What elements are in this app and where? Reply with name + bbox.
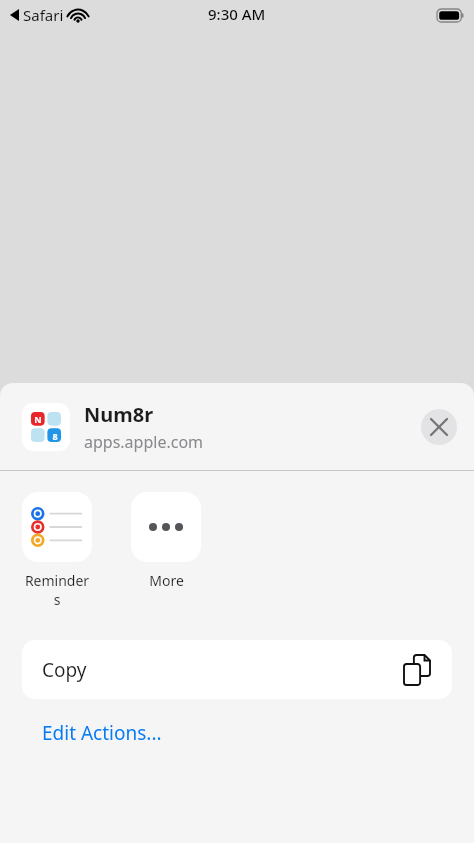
staticText: N <box>34 413 42 425</box>
staticText: Num8r <box>84 401 154 428</box>
staticText: Copy <box>42 657 404 683</box>
staticText: 8 <box>52 430 58 442</box>
staticText: Safari <box>23 5 64 25</box>
button[interactable]: N <box>0 396 474 458</box>
button[interactable]: Copy <box>22 640 452 699</box>
staticText: 9:30 AM <box>208 4 266 24</box>
staticText: Reminders <box>22 571 92 609</box>
button[interactable]: Close <box>421 409 457 445</box>
button[interactable]: Reminders <box>22 492 92 609</box>
staticText: apps.apple.com <box>84 431 204 453</box>
button[interactable]: More <box>131 492 201 590</box>
staticText: More <box>149 571 184 590</box>
button[interactable]: Edit Actions... <box>22 716 182 750</box>
staticText: Edit Actions... <box>42 720 162 746</box>
